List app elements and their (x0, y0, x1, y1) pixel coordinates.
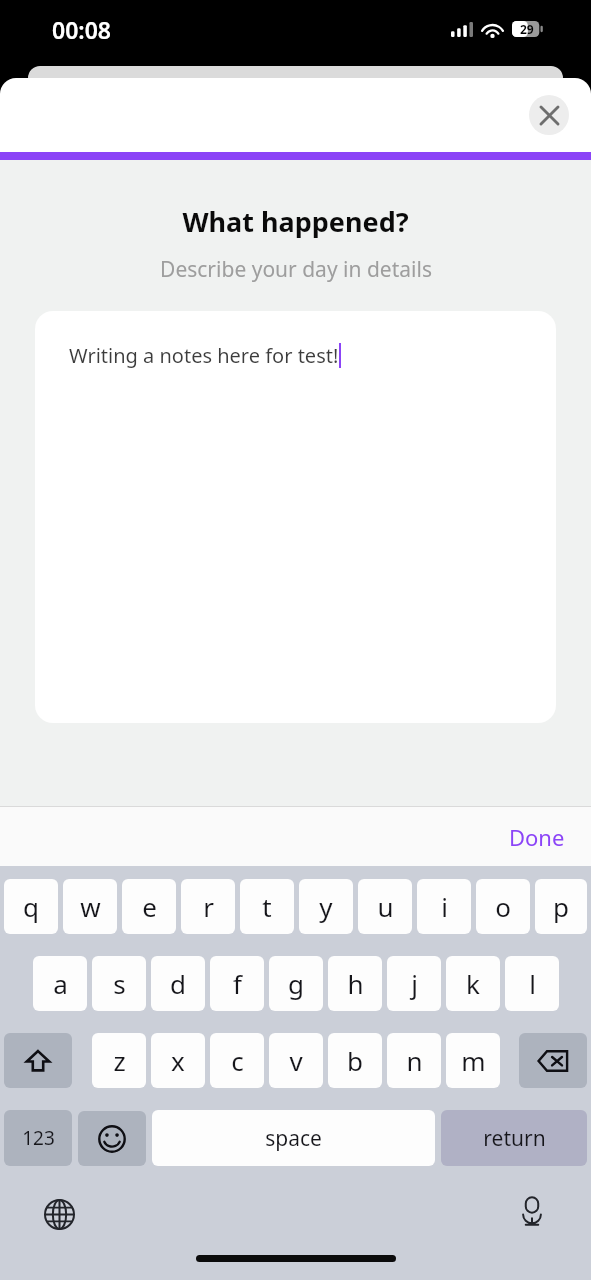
staticText: Writing a notes here for test! (69, 342, 339, 369)
button[interactable]: y (299, 879, 353, 934)
button[interactable]: e (122, 879, 176, 934)
staticText: e (142, 889, 157, 924)
staticText: s (113, 966, 126, 1001)
button[interactable]: r (181, 879, 235, 934)
button[interactable]: w (63, 879, 117, 934)
staticText: 00:08 (52, 14, 111, 45)
button[interactable]: space (152, 1110, 435, 1166)
staticText: n (406, 1043, 423, 1078)
staticText: l (529, 966, 536, 1001)
button[interactable]: v (269, 1033, 323, 1088)
staticText: d (170, 966, 186, 1001)
button[interactable]: a (33, 956, 87, 1011)
staticText: return (483, 1124, 546, 1153)
button[interactable]: q (4, 879, 58, 934)
button[interactable]: u (358, 879, 412, 934)
button[interactable]: p (535, 879, 587, 934)
staticText: space (265, 1124, 322, 1153)
staticText: w (80, 889, 101, 924)
button[interactable]: m (446, 1033, 500, 1088)
button[interactable]: s (92, 956, 146, 1011)
staticText: j (411, 966, 418, 1001)
staticText: c (231, 1043, 244, 1078)
staticText: h (347, 966, 364, 1001)
button[interactable]: i (417, 879, 471, 934)
button[interactable]: t (240, 879, 294, 934)
button[interactable]: z (92, 1033, 146, 1088)
staticText: b (347, 1043, 363, 1078)
staticText: f (233, 966, 242, 1001)
button[interactable]: Close (529, 95, 569, 135)
staticText: r (203, 889, 214, 924)
staticText: p (553, 889, 569, 924)
button[interactable]: c (210, 1033, 264, 1088)
button[interactable]: n (387, 1033, 441, 1088)
button[interactable]: k (446, 956, 500, 1011)
button[interactable]: Change keyboard language (38, 1193, 80, 1235)
button[interactable]: b (328, 1033, 382, 1088)
staticText: 123 (22, 1125, 55, 1151)
button[interactable]: Dictate (511, 1191, 553, 1233)
button[interactable]: 123 (4, 1110, 72, 1166)
button[interactable]: j (387, 956, 441, 1011)
staticText: g (288, 966, 304, 1001)
button[interactable]: d (151, 956, 205, 1011)
button[interactable]: o (476, 879, 530, 934)
button[interactable]: Done (501, 814, 573, 860)
staticText: k (466, 966, 480, 1001)
button[interactable]: Shift (4, 1033, 72, 1088)
staticText: i (441, 889, 448, 924)
button[interactable]: x (151, 1033, 205, 1088)
staticText: o (495, 889, 511, 924)
staticText: m (461, 1043, 486, 1078)
button[interactable]: Backspace (519, 1033, 587, 1088)
staticText: Describe your day in details (160, 255, 432, 284)
button[interactable]: Emoji (78, 1111, 146, 1166)
staticText: Done (509, 822, 565, 852)
staticText: y (319, 889, 333, 924)
button[interactable]: g (269, 956, 323, 1011)
button[interactable]: return (441, 1110, 587, 1166)
button[interactable]: Writing a notes here for test! (35, 311, 556, 723)
staticText: x (171, 1043, 185, 1078)
staticText: 29 (520, 21, 534, 37)
button[interactable]: l (505, 956, 559, 1011)
button[interactable]: h (328, 956, 382, 1011)
staticText: u (377, 889, 394, 924)
staticText: t (262, 889, 272, 924)
staticText: v (289, 1043, 303, 1078)
staticText: z (113, 1043, 126, 1078)
staticText: What happened? (182, 203, 409, 240)
button[interactable]: f (210, 956, 264, 1011)
staticText: q (23, 889, 39, 924)
staticText: a (53, 966, 68, 1001)
